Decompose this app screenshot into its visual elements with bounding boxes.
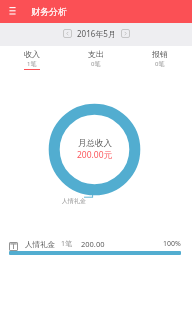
staticText: 人情礼金 [25,240,55,249]
button[interactable]: Menu [6,4,19,17]
button[interactable]: 收入 [0,46,64,70]
button[interactable]: Next month [121,29,130,38]
staticText: 支出 [88,49,104,59]
staticText: 收入 [24,49,40,59]
staticText: 200.00 [81,239,105,249]
staticText: 1笔 [27,60,37,68]
staticText: 0笔 [91,60,101,68]
button[interactable]: 人情礼金 [0,239,192,255]
staticText: 财务分析 [31,6,67,17]
button[interactable]: 支出 [64,46,128,69]
staticText: 2016年5月 [77,28,116,39]
button[interactable]: Previous month [63,29,72,38]
staticText: 月总收入 [78,138,112,149]
button[interactable]: 报销 [128,46,192,69]
staticText: 人情礼金 [62,197,86,205]
staticText: 1笔 [61,239,73,249]
staticText: 报销 [152,49,168,59]
staticText: 0笔 [155,60,165,68]
staticText: 200.00元 [77,149,113,161]
staticText: 100% [163,239,181,249]
